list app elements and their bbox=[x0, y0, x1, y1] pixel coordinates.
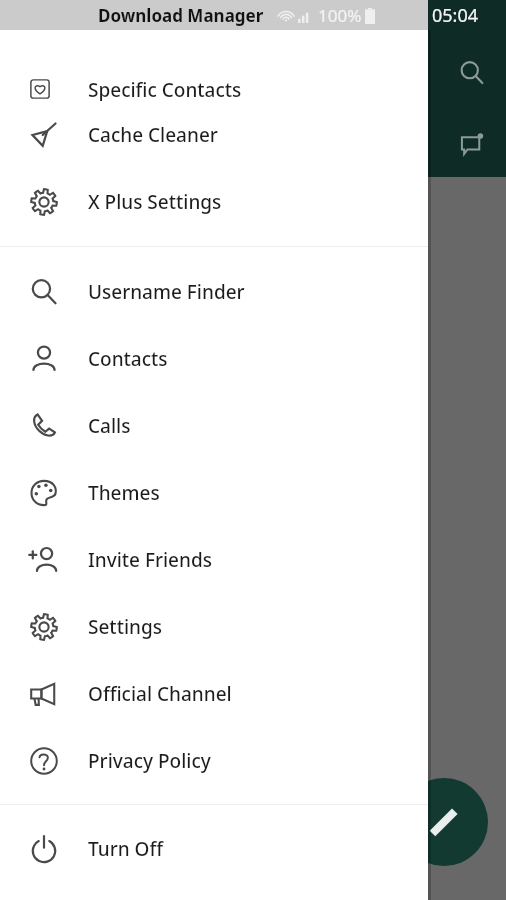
staticText: Invite Friends bbox=[88, 547, 212, 573]
staticText: Turn Off bbox=[88, 836, 163, 862]
staticText: Username Finder bbox=[88, 279, 245, 305]
button[interactable]: Compose bbox=[400, 778, 488, 866]
button[interactable]: Contacts bbox=[0, 325, 428, 392]
staticText: Download Manager bbox=[98, 4, 264, 27]
button[interactable]: Official Channel bbox=[0, 660, 428, 727]
button[interactable]: Search bbox=[447, 48, 497, 98]
button[interactable]: Settings bbox=[0, 593, 428, 660]
staticText: Cache Cleaner bbox=[88, 122, 218, 148]
staticText: Privacy Policy bbox=[88, 748, 211, 774]
button[interactable]: Cache Cleaner bbox=[0, 101, 428, 168]
staticText: Settings bbox=[88, 614, 162, 640]
button[interactable]: Privacy Policy bbox=[0, 727, 428, 794]
button[interactable]: New chat bbox=[447, 120, 497, 170]
button[interactable]: Calls bbox=[0, 392, 428, 459]
staticText: Themes bbox=[88, 480, 160, 506]
button[interactable]: Username Finder bbox=[0, 258, 428, 325]
button[interactable]: X Plus Settings bbox=[0, 168, 428, 235]
staticText: Calls bbox=[88, 413, 131, 439]
button[interactable]: Turn Off bbox=[0, 815, 428, 882]
button[interactable]: Invite Friends bbox=[0, 526, 428, 593]
staticText: 05:04 bbox=[432, 3, 479, 28]
staticText: Specific Contacts bbox=[88, 77, 242, 101]
staticText: Contacts bbox=[88, 346, 168, 372]
staticText: Official Channel bbox=[88, 681, 232, 707]
button[interactable]: Themes bbox=[0, 459, 428, 526]
staticText: X Plus Settings bbox=[88, 189, 222, 215]
button[interactable]: Specific Contacts bbox=[0, 34, 428, 101]
staticText: 100% bbox=[318, 4, 362, 27]
